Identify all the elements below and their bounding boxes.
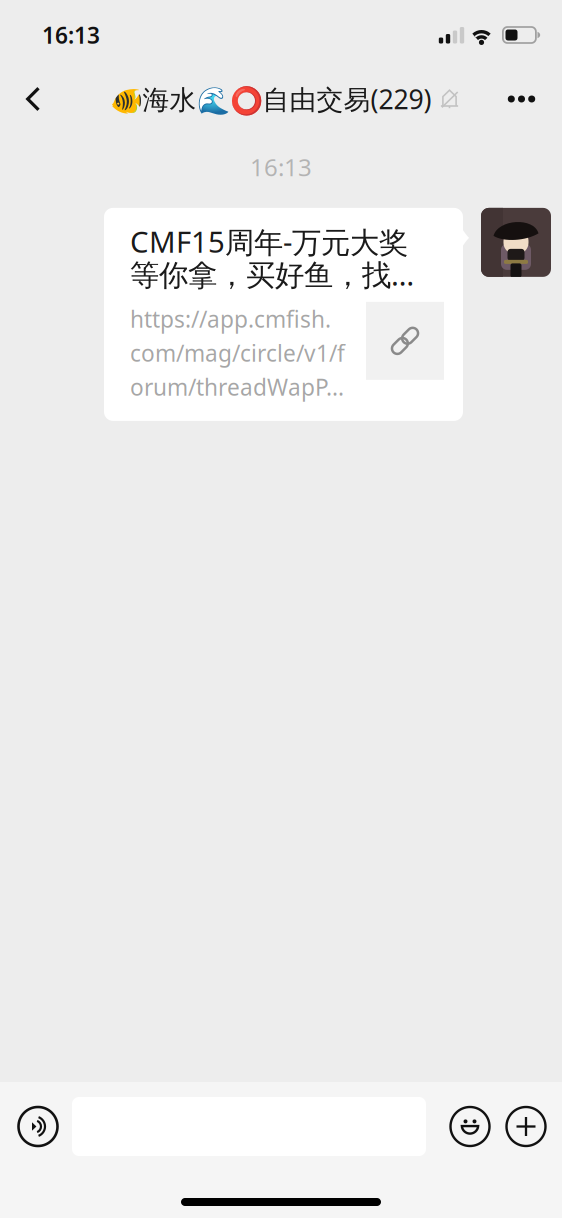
button[interactable]: Back xyxy=(0,70,66,128)
button[interactable]: Emoji xyxy=(442,1097,498,1156)
staticText: 16:13 xyxy=(42,20,100,50)
button[interactable]: Voice message xyxy=(10,1097,66,1156)
button[interactable]: More xyxy=(489,70,554,128)
button[interactable]: More options xyxy=(498,1097,554,1156)
staticText: com/mag/circle/v1/f xyxy=(130,338,345,368)
button[interactable]: CMF15周年-万元大奖 xyxy=(104,208,463,421)
staticText: orum/threadWapP... xyxy=(130,372,344,402)
staticText: CMF15周年-万元大奖 xyxy=(130,222,408,261)
staticText: https://app.cmfish. xyxy=(130,304,331,334)
staticText: 🐠海水🌊⭕自由交易(229) xyxy=(109,81,431,117)
button[interactable]: Sender avatar xyxy=(481,208,551,277)
staticText: 16:13 xyxy=(250,151,312,183)
staticText: 等你拿，买好鱼，找… xyxy=(130,255,414,294)
